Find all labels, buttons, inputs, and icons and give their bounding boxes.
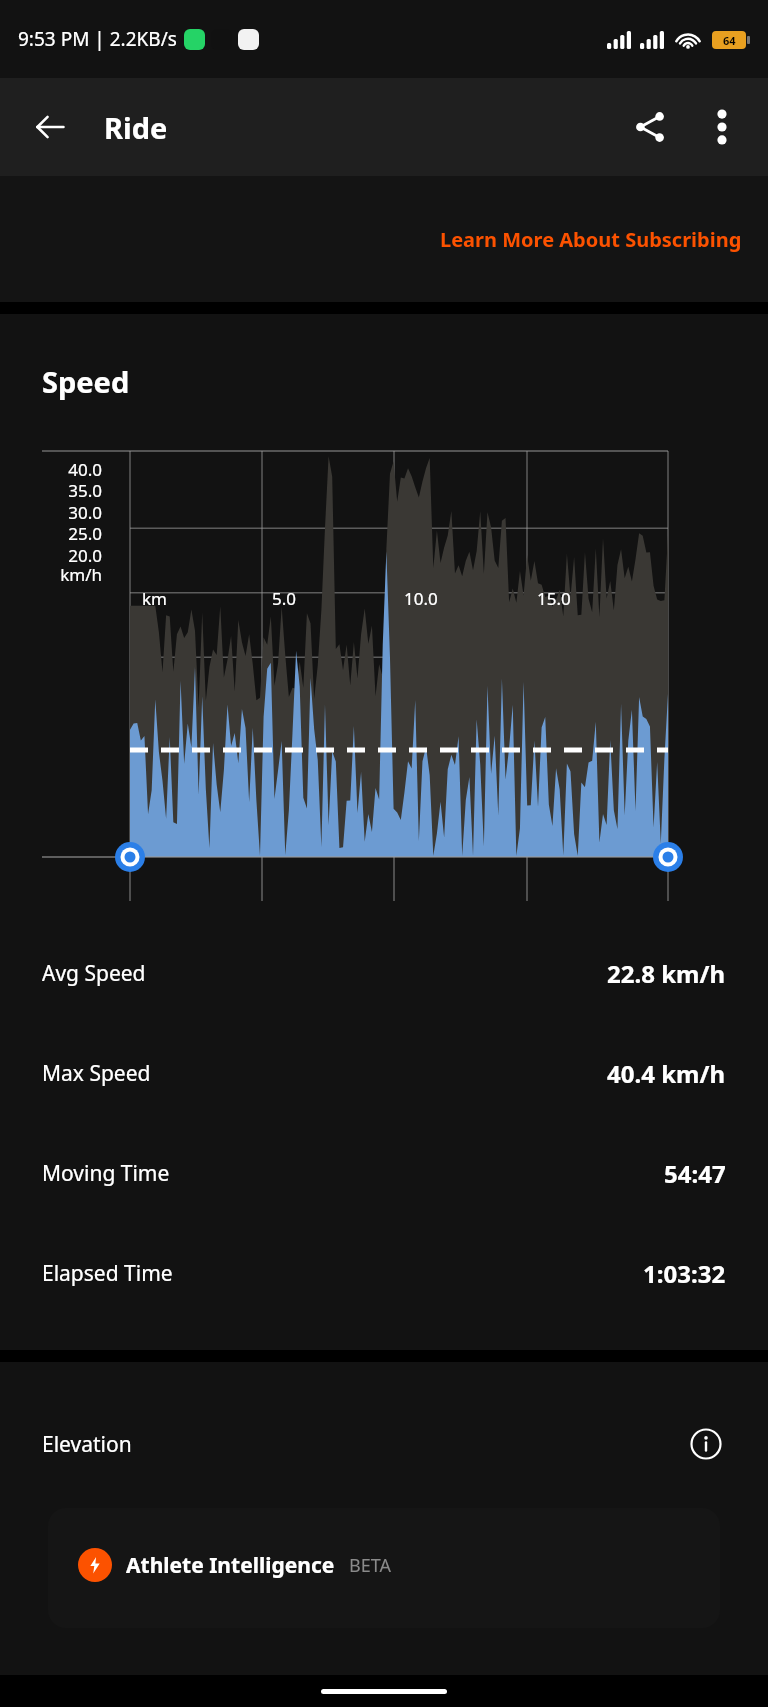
button[interactable]: Elapsed Time <box>0 1257 768 1290</box>
button[interactable]: Avg Speed <box>0 957 768 990</box>
staticText: 5.0 <box>272 587 297 610</box>
button[interactable]: Back <box>24 101 76 153</box>
staticText: Ride <box>104 108 168 147</box>
staticText: km/h <box>0 563 102 586</box>
staticText: Moving Time <box>42 1159 170 1188</box>
staticText: 15.0 <box>537 587 571 610</box>
button[interactable]: Info <box>686 1424 726 1464</box>
staticText: Athlete Intelligence <box>126 1551 335 1580</box>
staticText: Avg Speed <box>42 959 146 988</box>
button[interactable]: Learn More About Subscribing <box>434 218 748 261</box>
button[interactable]: Athlete Intelligence <box>48 1508 720 1628</box>
button[interactable]: Max Speed <box>0 1057 768 1090</box>
staticText: Learn More About Subscribing <box>440 226 742 253</box>
button[interactable]: Moving Time <box>0 1157 768 1190</box>
staticText: Speed <box>42 362 130 401</box>
staticText: 9:53 PM | 2.2KB/s <box>18 26 177 52</box>
staticText: 40.4 km/h <box>607 1057 726 1090</box>
staticText: Max Speed <box>42 1059 151 1088</box>
staticText: 22.8 km/h <box>607 957 726 990</box>
staticText: 54:47 <box>664 1157 726 1190</box>
staticText: 30.0 <box>0 501 102 524</box>
staticText: BETA <box>349 1553 391 1578</box>
staticText: 1:03:32 <box>643 1257 726 1290</box>
staticText: Elevation <box>42 1430 132 1459</box>
staticText: 25.0 <box>0 522 102 545</box>
staticText: 20.0 <box>0 544 102 567</box>
staticText: km <box>142 587 167 610</box>
staticText: 40.0 <box>0 458 102 481</box>
staticText: 64 <box>723 33 736 48</box>
staticText: 10.0 <box>404 587 438 610</box>
button[interactable]: More options <box>696 101 748 153</box>
staticText: Elapsed Time <box>42 1259 173 1288</box>
staticText: 35.0 <box>0 479 102 502</box>
button[interactable]: Share <box>622 99 678 155</box>
